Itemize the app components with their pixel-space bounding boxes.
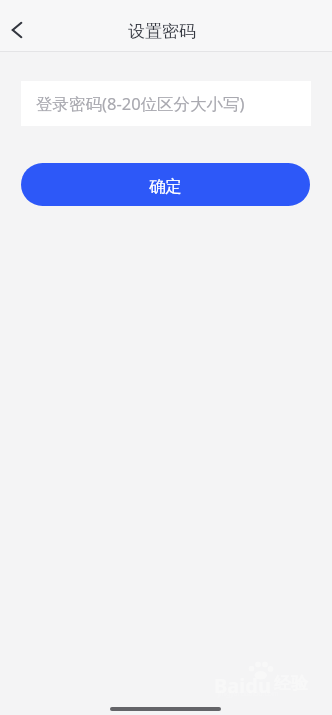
staticText: 登录密码(8-20位区分大小写) [36,92,245,115]
button[interactable]: 登录密码(8-20位区分大小写) [21,81,311,126]
staticText: 确定 [149,176,182,197]
button[interactable]: Back [0,8,39,52]
staticText: 设置密码 [128,21,196,42]
button[interactable]: 确定 [21,163,310,206]
